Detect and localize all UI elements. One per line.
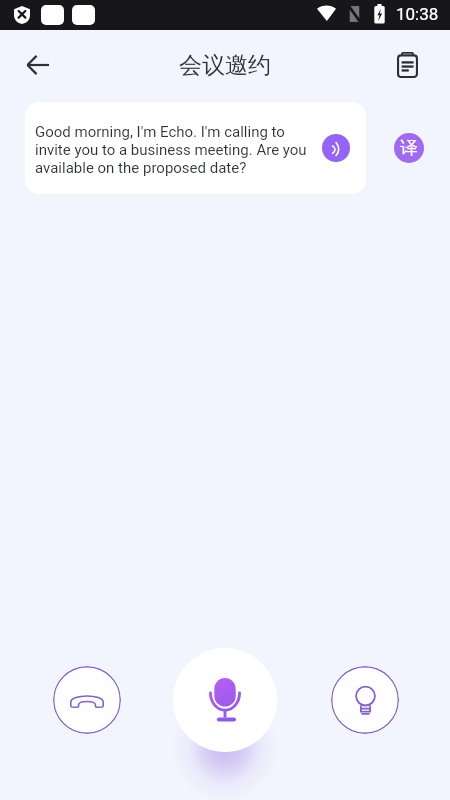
button[interactable]: Back — [14, 41, 62, 89]
button[interactable]: Suggestions — [331, 666, 399, 734]
button[interactable]: Good morning, I'm Echo. I'm calling to i… — [25, 102, 366, 194]
button[interactable]: Translate — [394, 133, 424, 163]
staticText: 10:38 — [396, 4, 439, 24]
staticText: 会议邀约 — [179, 51, 271, 80]
staticText: 译 — [400, 137, 418, 160]
button[interactable]: Notes — [385, 43, 429, 87]
button[interactable]: End call — [53, 666, 121, 734]
button[interactable]: Play audio — [322, 134, 350, 162]
button[interactable]: Microphone — [173, 648, 277, 752]
staticText: Good morning, I'm Echo. I'm calling to i… — [35, 123, 320, 177]
